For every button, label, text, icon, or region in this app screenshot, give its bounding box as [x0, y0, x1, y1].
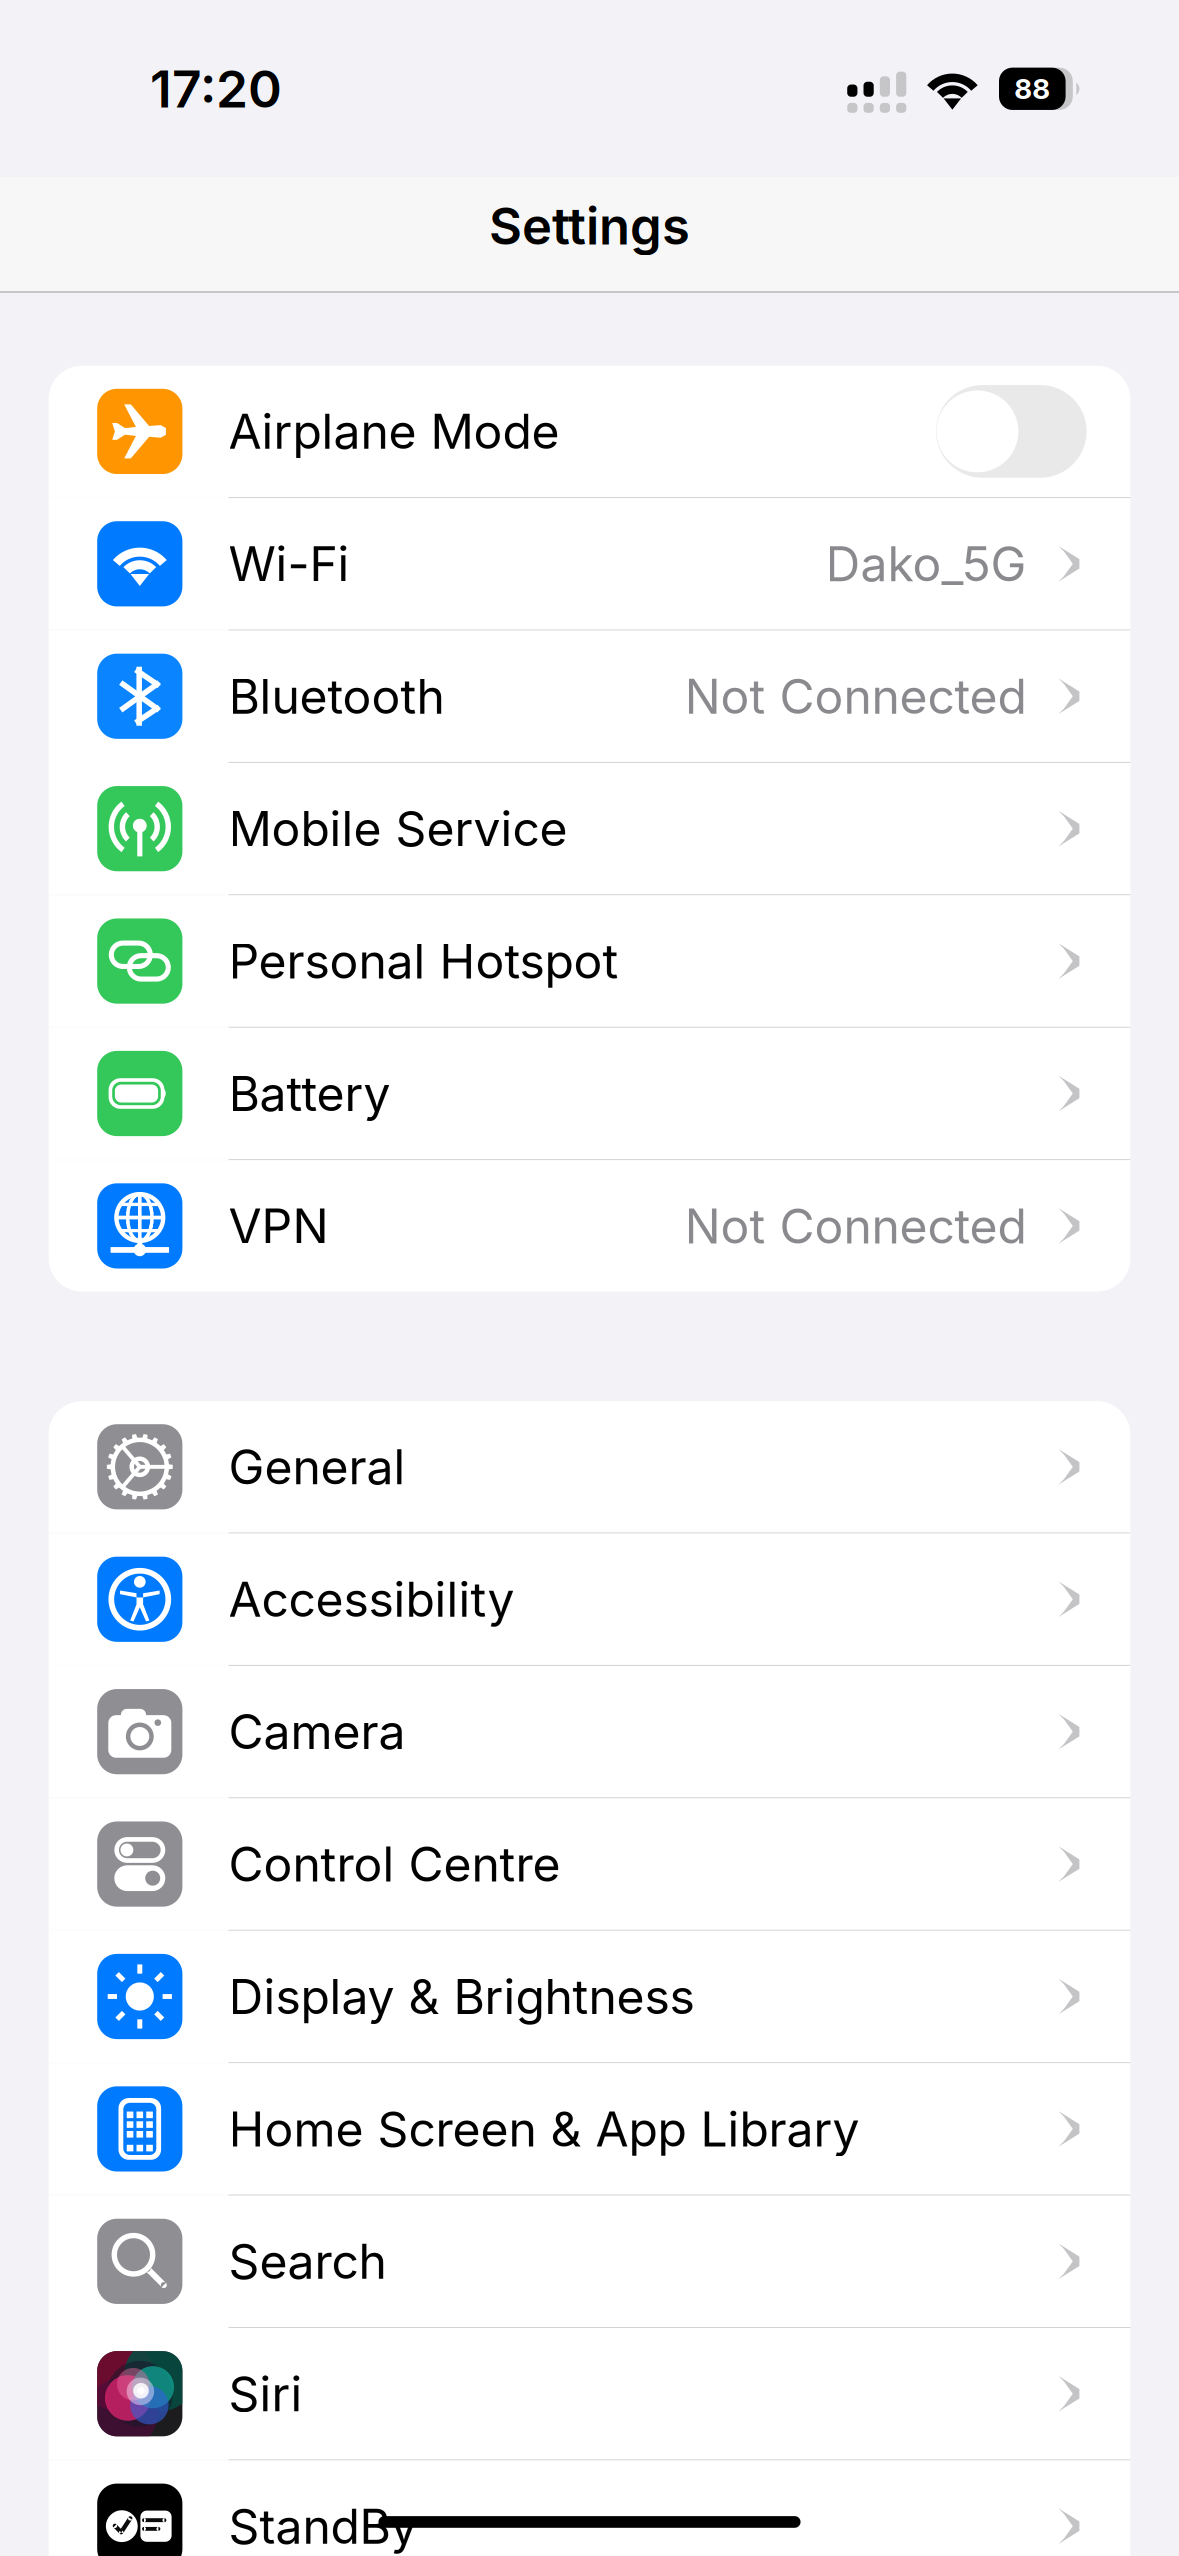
staticText: Personal Hotspot — [229, 932, 619, 990]
staticText: Wi-Fi — [229, 535, 350, 593]
button[interactable]: Personal Hotspot — [49, 895, 1130, 1027]
button[interactable]: VPN — [49, 1160, 1130, 1292]
staticText: Home Screen & App Library — [229, 2100, 860, 2158]
staticText: Airplane Mode — [229, 402, 560, 460]
staticText: 88 — [1014, 72, 1050, 106]
button[interactable]: Home Screen & App Library — [49, 2063, 1130, 2195]
button[interactable]: Mobile Service — [49, 763, 1130, 894]
staticText: Siri — [229, 2365, 303, 2423]
button[interactable]: Accessibility — [49, 1533, 1130, 1665]
staticText: Display & Brightness — [229, 1967, 695, 2026]
staticText: Not Connected — [685, 1197, 1027, 1255]
staticText: Accessibility — [229, 1570, 515, 1628]
button[interactable]: Display & Brightness — [49, 1931, 1130, 2062]
staticText: Search — [229, 2232, 387, 2290]
staticText: 17:20 — [150, 58, 282, 120]
button[interactable]: Bluetooth — [49, 630, 1130, 762]
button[interactable]: Search — [49, 2196, 1130, 2327]
button[interactable]: Battery — [49, 1028, 1130, 1159]
staticText: Mobile Service — [229, 800, 568, 858]
staticText: VPN — [229, 1197, 329, 1255]
button[interactable]: Control Centre — [49, 1798, 1130, 1930]
staticText: StandBy — [229, 2497, 418, 2555]
button[interactable]: General — [49, 1401, 1130, 1532]
staticText: Control Centre — [229, 1835, 561, 1893]
button[interactable]: StandBy — [49, 2460, 1130, 2556]
button[interactable]: Airplane Mode — [49, 366, 1130, 497]
button[interactable]: Wi-Fi — [49, 498, 1130, 629]
staticText: Dako_5G — [826, 535, 1027, 593]
staticText: Not Connected — [685, 667, 1027, 725]
staticText: Bluetooth — [229, 667, 445, 725]
button[interactable]: Siri — [49, 2328, 1130, 2459]
staticText: Camera — [229, 1703, 406, 1761]
staticText: Battery — [229, 1064, 391, 1123]
staticText: Settings — [489, 195, 690, 257]
button[interactable]: Camera — [49, 1666, 1130, 1797]
staticText: General — [229, 1438, 406, 1496]
